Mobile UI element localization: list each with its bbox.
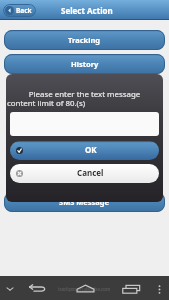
button[interactable]: SMS Message [4,192,165,212]
button[interactable]: Back [27,279,47,299]
button[interactable]: History [4,54,165,74]
button[interactable]: Recent apps [121,279,141,299]
button[interactable]: Home [75,278,95,298]
staticText: Back [16,6,32,15]
staticText: content limit of 80.(s) [7,98,86,109]
button[interactable]: OK [10,141,159,160]
staticText: Select Action [61,5,113,16]
staticText: SMS Message [59,197,110,207]
button[interactable]: Hide navigation bar [4,283,16,295]
button[interactable]: Tracking [4,30,165,50]
button[interactable]: Back [3,4,36,17]
staticText: trackpro.en.alibaba.com [58,286,111,292]
staticText: Cancel [77,167,104,178]
button[interactable]: Cancel [10,164,159,183]
button[interactable]: More options [153,283,165,295]
button[interactable] [10,112,159,136]
staticText: Tracking [68,35,101,45]
staticText: OK [85,144,97,155]
staticText: Please enter the text message [6,89,163,100]
staticText: History [71,59,99,69]
